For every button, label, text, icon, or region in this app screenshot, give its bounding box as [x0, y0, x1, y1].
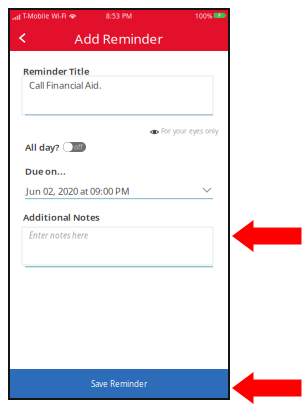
staticText: Due on...: [25, 165, 66, 177]
button[interactable]: All day toggle: [63, 142, 86, 152]
staticText: Jun 02, 2020 at 09:00 PM: [26, 185, 129, 197]
staticText: For your eyes only: [161, 126, 218, 135]
staticText: T-Mobile Wi-Fi: [22, 11, 66, 20]
staticText: Add Reminder: [74, 30, 163, 47]
staticText: off: [74, 143, 83, 151]
staticText: Enter notes here: [29, 230, 88, 241]
staticText: Save Reminder: [91, 379, 147, 389]
staticText: All day?: [25, 141, 59, 153]
staticText: Reminder Title: [23, 65, 89, 77]
staticText: Additional Notes: [23, 211, 100, 223]
button[interactable]: Jun 02, 2020 at 09:00 PM: [25, 184, 213, 197]
button[interactable]: Back: [9, 26, 37, 51]
staticText: 100%: [195, 11, 213, 20]
button[interactable]: Save Reminder: [9, 369, 229, 399]
staticText: Call Financial Aid.: [29, 79, 102, 91]
staticText: 8:53 PM: [106, 11, 132, 20]
